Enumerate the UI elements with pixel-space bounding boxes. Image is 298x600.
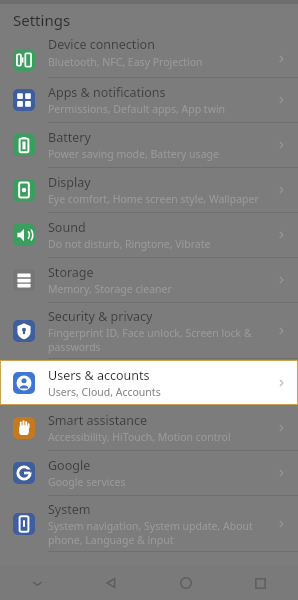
staticText: Eye comfort, Home screen style, Wallpape… — [48, 192, 259, 206]
button[interactable]: Apps & notifications — [0, 78, 298, 122]
staticText: phone, Language & input — [48, 533, 174, 547]
staticText: Users & accounts — [48, 367, 150, 384]
staticText: Apps & notifications — [48, 84, 166, 101]
staticText: Google services — [48, 475, 126, 489]
staticText: Security & privacy — [48, 308, 153, 325]
staticText: System — [48, 501, 91, 518]
button[interactable]: Users & accounts — [0, 360, 298, 405]
staticText: Device connection — [48, 36, 155, 53]
button[interactable]: System — [0, 496, 298, 551]
staticText: Sound — [48, 219, 86, 236]
button[interactable]: Security & privacy — [0, 303, 298, 358]
staticText: Storage — [48, 264, 94, 281]
staticText: Permissions, Default apps, App twin — [48, 102, 226, 116]
staticText: Display — [48, 174, 91, 191]
button[interactable]: Device connection — [0, 36, 298, 77]
button[interactable]: Google — [0, 451, 298, 495]
staticText: Battery — [48, 129, 91, 146]
button[interactable]: Back — [74, 566, 148, 600]
button[interactable]: Smart assistance — [0, 406, 298, 450]
staticText: passwords — [48, 340, 101, 354]
button[interactable]: Storage — [0, 258, 298, 302]
staticText: System navigation, System update, About — [48, 519, 253, 533]
staticText: Do not disturb, Ringtone, Vibrate — [48, 237, 211, 251]
staticText: Google — [48, 457, 91, 474]
button[interactable]: Battery — [0, 123, 298, 167]
staticText: Memory, Storage cleaner — [48, 282, 172, 296]
staticText: Fingerprint ID, Face unlock, Screen lock… — [48, 326, 252, 340]
staticText: Users, Cloud, Accounts — [48, 385, 161, 399]
staticText: Settings — [13, 10, 71, 30]
button[interactable]: Home — [148, 566, 223, 600]
staticText: Smart assistance — [48, 412, 147, 429]
staticText: Power saving mode, Battery usage — [48, 147, 219, 161]
button[interactable]: Display — [0, 168, 298, 212]
button[interactable]: Recents — [223, 566, 298, 600]
staticText: Accessibility, HiTouch, Motion control — [48, 430, 231, 444]
staticText: Bluetooth, NFC, Easy Projection — [48, 55, 203, 69]
button[interactable]: Sound — [0, 213, 298, 257]
